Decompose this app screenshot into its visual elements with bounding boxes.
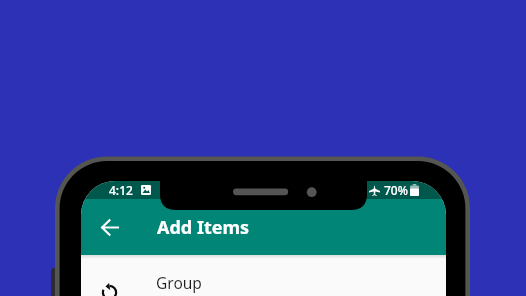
button[interactable]: Group (81, 255, 446, 296)
staticText: 4:12 (109, 182, 133, 198)
button[interactable]: Back (85, 203, 133, 251)
staticText: Group (156, 272, 202, 293)
staticText: Add Items (157, 215, 250, 240)
staticText: 70% (384, 182, 408, 198)
